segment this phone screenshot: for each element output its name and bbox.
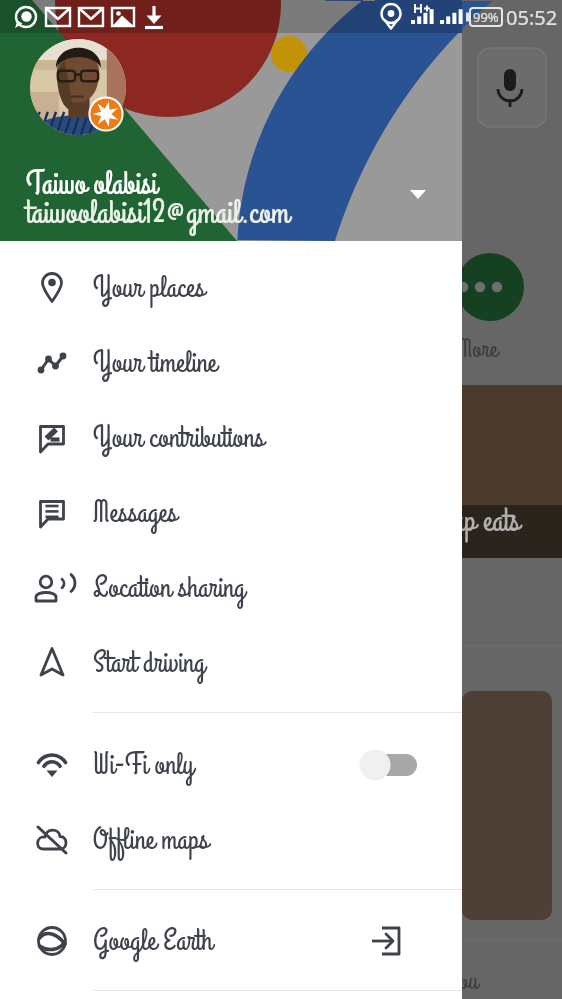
staticText: Messages [93,493,178,534]
staticText: ap eats [453,500,520,543]
staticText: Your timeline [93,343,217,384]
button[interactable]: Switch account [400,176,436,212]
button[interactable]: Start driving [0,626,462,700]
staticText: ou [459,963,478,998]
staticText: 05:52 [506,4,558,31]
staticText: Start driving [93,643,205,684]
button[interactable]: Your contributions [0,401,462,475]
button[interactable]: Google Earth [0,904,462,978]
staticText: Your contributions [93,418,265,459]
staticText: Offline maps [93,820,209,861]
staticText: 99% [473,8,499,26]
button[interactable]: Offline maps [0,803,462,877]
staticText: Google Earth [93,921,213,962]
button[interactable]: Your timeline [0,326,462,400]
button[interactable]: Wi-Fi only [0,728,462,802]
staticText: Taiwo olabisi [26,163,157,206]
button[interactable]: Profile photo [30,39,126,135]
staticText: taiwoolabisi12@gmail.com [26,191,290,236]
button[interactable]: Location sharing [0,551,462,625]
button[interactable]: Messages [0,476,462,550]
staticText: More [458,331,498,366]
staticText: Your places [93,268,205,309]
button[interactable]: Your places [0,251,462,325]
staticText: Location sharing [93,568,245,609]
staticText: Wi-Fi only [93,745,194,786]
